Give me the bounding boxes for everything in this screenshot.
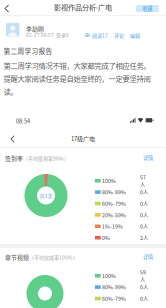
staticText: 读。 — [3, 86, 17, 97]
button[interactable]: Back — [10, 134, 20, 143]
button[interactable]: 详情 — [143, 253, 153, 260]
staticText: 收藏 — [142, 5, 152, 12]
staticText: 1%-19% — [102, 222, 123, 230]
staticText: 100% — [102, 177, 116, 184]
staticText: 0% — [102, 234, 110, 241]
staticText: 0人 — [140, 188, 148, 196]
staticText: 第二周学习报告 — [3, 46, 52, 56]
staticText: 57人 — [140, 173, 146, 188]
staticText: 详情 — [143, 154, 153, 161]
staticText: 02-27 08:57 登录0 — [26, 31, 69, 38]
staticText: 2人 — [140, 234, 148, 241]
staticText: 0人 — [140, 283, 148, 291]
staticText: 0人 — [140, 295, 148, 302]
staticText: 59人 — [140, 268, 146, 283]
staticText: 20%-59% — [102, 211, 126, 219]
button[interactable]: 编辑 — [124, 31, 140, 39]
staticText: 80%-99% — [102, 283, 126, 291]
staticText: 0人 — [140, 211, 148, 219]
staticText: （平均签到率96%） — [23, 155, 69, 162]
button[interactable]: 收藏 — [136, 5, 159, 12]
staticText: 阅读17 — [92, 31, 108, 39]
staticText: 章节视频 — [5, 253, 29, 261]
staticText: 0人 — [140, 200, 148, 207]
staticText: 影视作品分析-广电 — [54, 2, 112, 12]
staticText: 详情 — [143, 253, 153, 260]
staticText: 评论 — [114, 31, 124, 39]
staticText: 100% — [102, 272, 116, 279]
staticText: 60%-79% — [102, 200, 126, 207]
staticText: 签到率 — [5, 154, 23, 162]
staticText: 60%-79% — [102, 295, 126, 302]
staticText: 17级广电 — [71, 134, 95, 143]
staticText: 第二周学习情况不错，大家都完成了相应任务。 — [3, 60, 150, 71]
staticText: 0人 — [140, 222, 148, 230]
button[interactable]: 阅读17 — [90, 31, 108, 39]
button[interactable]: Back — [4, 4, 15, 14]
staticText: 编辑 — [130, 31, 140, 39]
staticText: 共3次 — [39, 192, 52, 199]
staticText: （平均完成率100%） — [29, 254, 78, 261]
button[interactable]: 评论 — [108, 31, 124, 39]
button[interactable]: 详情 — [143, 154, 153, 161]
staticText: 80%-99% — [102, 188, 126, 196]
staticText: 08:54 — [16, 117, 30, 125]
staticText: 李劼刚 — [26, 24, 44, 33]
staticText: 提醒大家阅读任务是自始至终的，一定要坚持阅 — [3, 73, 150, 84]
